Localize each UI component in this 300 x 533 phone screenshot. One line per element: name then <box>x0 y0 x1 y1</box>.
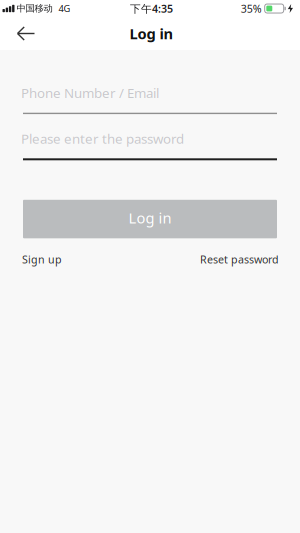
staticText: Reset password <box>200 252 279 266</box>
staticText: 中国移动 <box>16 3 52 14</box>
button[interactable]: Reset password <box>200 252 279 266</box>
button[interactable]: Log in <box>23 200 277 238</box>
staticText: Log in <box>128 208 171 228</box>
button[interactable]: Please enter the password <box>0 130 300 160</box>
staticText: 下午4:35 <box>130 1 173 16</box>
staticText: 35% <box>241 1 262 16</box>
button[interactable]: Phone Number / Email <box>0 84 300 114</box>
staticText: Please enter the password <box>21 130 184 147</box>
staticText: 4G <box>58 2 70 15</box>
staticText: Phone Number / Email <box>21 84 159 102</box>
button[interactable]: Back <box>0 18 34 49</box>
staticText: Sign up <box>22 252 62 266</box>
staticText: Log in <box>129 24 173 43</box>
button[interactable]: Sign up <box>22 252 62 266</box>
